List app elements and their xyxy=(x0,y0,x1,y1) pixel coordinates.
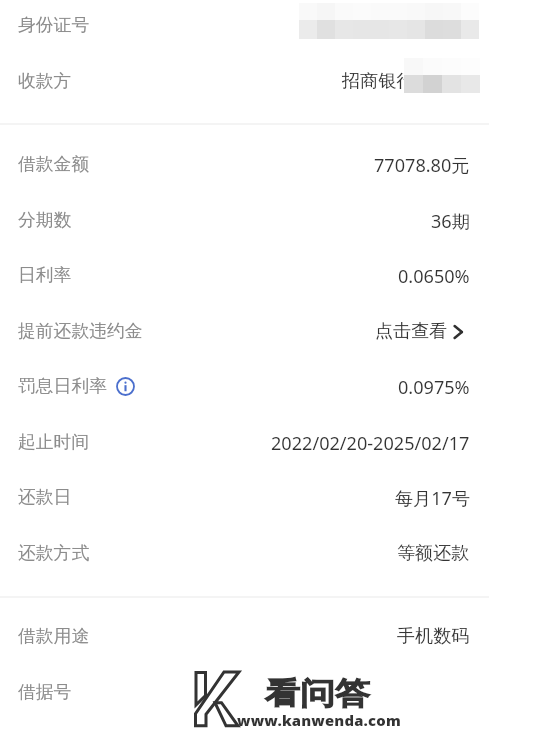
staticText: 收款方 xyxy=(18,70,72,92)
staticText: 借款金额 xyxy=(18,153,90,175)
staticText: 36期 xyxy=(431,209,470,234)
button[interactable] xyxy=(0,612,489,668)
staticText: 招商银行 xyxy=(342,70,415,93)
staticText: 借款用途 xyxy=(18,625,90,647)
staticText: 提前还款违约金 xyxy=(18,320,143,342)
staticText: 点击查看 xyxy=(375,320,448,343)
button[interactable] xyxy=(0,56,489,112)
staticText: 每月17号 xyxy=(395,486,470,511)
button[interactable] xyxy=(0,528,489,584)
staticText: 日利率 xyxy=(18,264,72,286)
staticText: 看问答 xyxy=(265,674,370,712)
staticText: 起止时间 xyxy=(18,431,90,453)
staticText: 还款方式 xyxy=(18,542,90,564)
button[interactable] xyxy=(0,306,489,362)
button[interactable] xyxy=(0,1,489,57)
staticText: 等额还款 xyxy=(397,542,470,565)
staticText: 77078.80元 xyxy=(374,153,470,178)
staticText: www.kanwenda.com xyxy=(237,710,401,730)
button[interactable] xyxy=(0,667,489,723)
staticText: 0.0650% xyxy=(398,264,470,289)
staticText: 分期数 xyxy=(18,209,72,231)
button[interactable]: 罚息日利率说明 xyxy=(116,377,135,396)
button[interactable] xyxy=(0,195,489,251)
button[interactable] xyxy=(0,473,489,529)
button[interactable] xyxy=(0,140,489,196)
staticText: 2022/02/20-2025/02/17 xyxy=(271,431,470,456)
button[interactable] xyxy=(0,251,489,307)
staticText: 还款日 xyxy=(18,486,72,508)
staticText: 0.0975% xyxy=(398,375,470,400)
staticText: 借据号 xyxy=(18,681,72,703)
staticText: 身份证号 xyxy=(18,14,90,36)
staticText: 罚息日利率 xyxy=(18,375,107,397)
staticText: 手机数码 xyxy=(397,625,470,648)
button[interactable]: 点击查看 xyxy=(375,320,470,343)
button[interactable] xyxy=(0,362,489,418)
button[interactable] xyxy=(0,417,489,473)
